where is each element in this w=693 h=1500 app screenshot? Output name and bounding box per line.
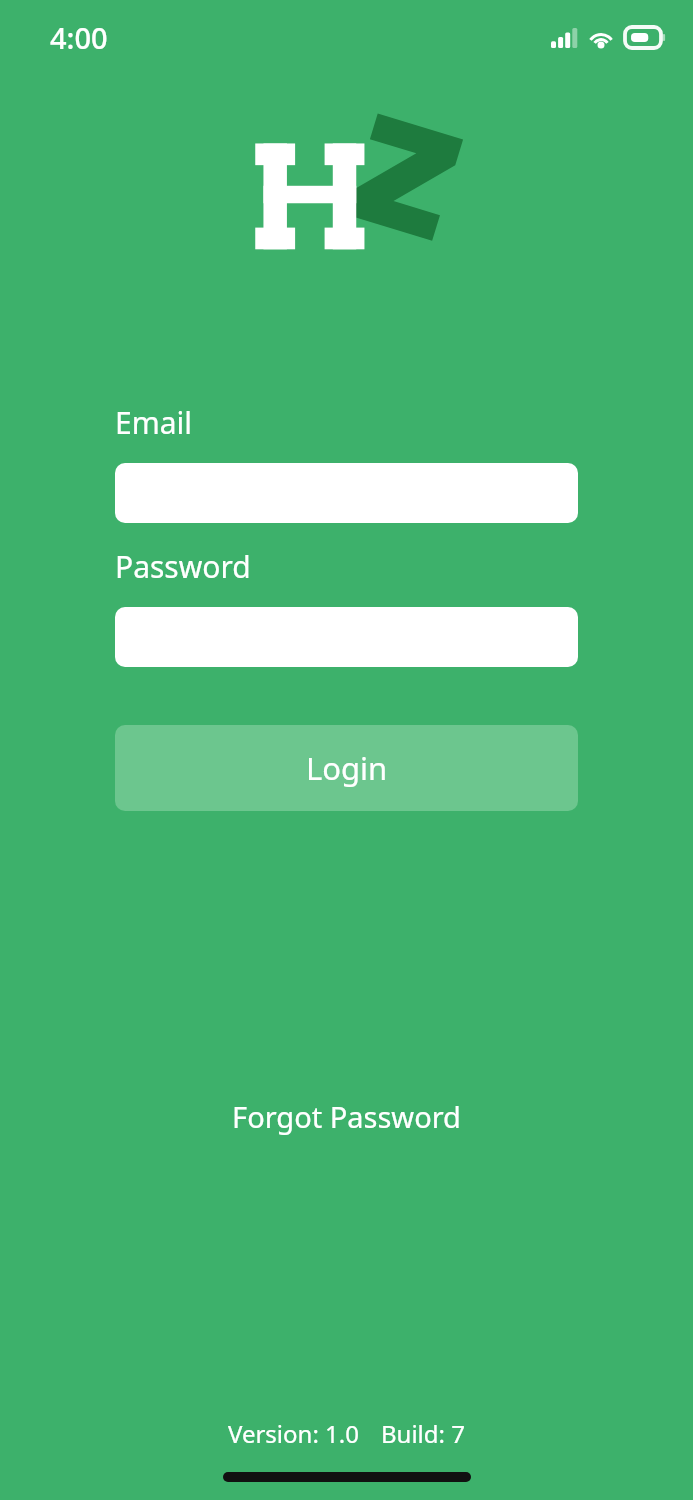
staticText: Password — [115, 546, 251, 587]
staticText: Email — [115, 402, 193, 443]
button[interactable]: Login — [115, 725, 578, 811]
staticText: Login — [306, 747, 388, 789]
staticText: 4:00 — [50, 18, 108, 57]
button[interactable]: Forgot Password — [216, 1089, 477, 1144]
button[interactable]: Password input field — [115, 607, 578, 667]
staticText: Version: 1.0 — [228, 1417, 359, 1450]
button[interactable]: Email input field — [115, 463, 578, 523]
staticText: Build: 7 — [381, 1417, 465, 1450]
staticText: Forgot Password — [232, 1097, 461, 1136]
